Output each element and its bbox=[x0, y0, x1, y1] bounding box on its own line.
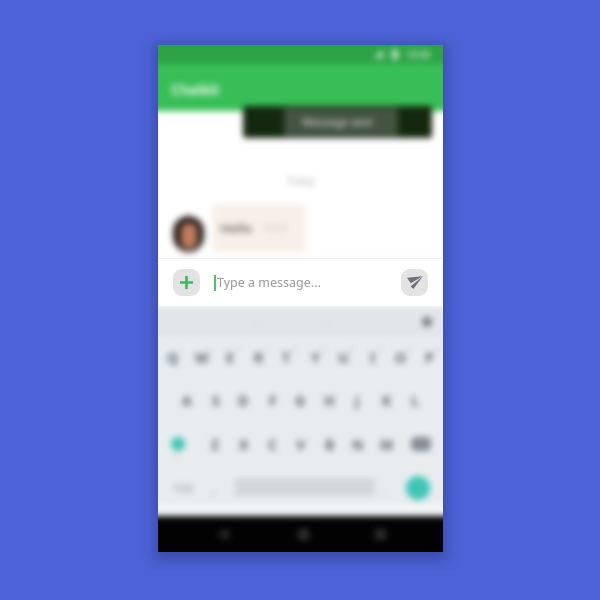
staticText: F bbox=[269, 391, 277, 410]
button[interactable]: R bbox=[244, 347, 273, 367]
button[interactable]: . bbox=[373, 476, 395, 500]
staticText: H bbox=[324, 391, 335, 410]
staticText: L bbox=[411, 391, 419, 410]
staticText: D bbox=[238, 391, 249, 410]
button[interactable]: U bbox=[329, 347, 358, 367]
button[interactable]: O bbox=[386, 347, 415, 367]
staticText: B bbox=[325, 435, 335, 454]
staticText: E bbox=[226, 348, 234, 367]
staticText: Type a message... bbox=[217, 274, 321, 291]
button[interactable]: Y bbox=[301, 347, 330, 367]
staticText: Z bbox=[211, 435, 220, 454]
button[interactable]: Backspace bbox=[407, 434, 435, 454]
staticText: 2 bbox=[208, 345, 212, 353]
staticText: M bbox=[380, 435, 394, 454]
button[interactable]: Z bbox=[201, 434, 230, 454]
staticText: C bbox=[268, 435, 277, 454]
button[interactable]: J bbox=[343, 390, 372, 410]
button[interactable]: K bbox=[372, 390, 401, 410]
button[interactable]: L bbox=[400, 390, 429, 410]
button[interactable]: Enter bbox=[406, 476, 430, 500]
staticText: G bbox=[295, 391, 306, 410]
staticText: J bbox=[355, 391, 360, 410]
staticText: Today bbox=[287, 174, 315, 188]
button[interactable]: Send bbox=[401, 269, 428, 296]
staticText: 10:30 bbox=[407, 48, 431, 60]
button[interactable]: Send bbox=[401, 269, 428, 296]
staticText: R bbox=[254, 348, 264, 367]
button[interactable]: N bbox=[343, 434, 372, 454]
staticText: A bbox=[182, 391, 192, 410]
button[interactable]: X bbox=[229, 434, 258, 454]
button[interactable]: B bbox=[315, 434, 344, 454]
button[interactable]: C bbox=[258, 434, 287, 454]
button[interactable]: Shift bbox=[164, 434, 192, 454]
button[interactable]: Home bbox=[289, 516, 317, 552]
staticText: N bbox=[352, 435, 364, 454]
staticText: Type a message... bbox=[217, 274, 321, 291]
staticText: U bbox=[338, 348, 349, 367]
staticText: K bbox=[382, 391, 392, 410]
button[interactable]: S bbox=[201, 390, 230, 410]
staticText: Message sent bbox=[302, 114, 373, 129]
button[interactable]: E bbox=[215, 347, 244, 367]
button[interactable]: Keyboard settings bbox=[421, 316, 433, 328]
staticText: I bbox=[370, 348, 376, 367]
staticText: S bbox=[212, 391, 220, 410]
button[interactable]: I bbox=[358, 347, 387, 367]
button[interactable]: V bbox=[286, 434, 315, 454]
button[interactable]: H bbox=[315, 390, 344, 410]
staticText: P bbox=[425, 348, 434, 367]
staticText: Chatkit bbox=[171, 80, 220, 99]
button[interactable]: A bbox=[172, 390, 201, 410]
staticText: W bbox=[195, 348, 209, 367]
staticText: T bbox=[282, 348, 291, 367]
button[interactable]: Add attachment bbox=[173, 269, 200, 296]
staticText: Q bbox=[167, 348, 179, 367]
button[interactable]: ?123 bbox=[167, 476, 199, 500]
button[interactable]: P bbox=[415, 347, 443, 367]
button[interactable]: Recents bbox=[366, 516, 394, 552]
button[interactable]: Q bbox=[158, 347, 187, 367]
button[interactable]: W bbox=[187, 347, 216, 367]
staticText: V bbox=[296, 435, 306, 454]
button[interactable]: G bbox=[286, 390, 315, 410]
staticText: X bbox=[239, 435, 249, 454]
button[interactable]: M bbox=[372, 434, 401, 454]
staticText: Hello bbox=[220, 219, 253, 237]
button[interactable]: Back bbox=[208, 516, 236, 552]
button[interactable]: D bbox=[229, 390, 258, 410]
staticText: ?123 bbox=[173, 482, 193, 494]
button[interactable]: F bbox=[258, 390, 287, 410]
staticText: O bbox=[395, 348, 407, 367]
button[interactable]: Space bbox=[235, 478, 375, 496]
button[interactable]: T bbox=[272, 347, 301, 367]
button[interactable]: Add attachment bbox=[173, 269, 200, 296]
staticText: Y bbox=[311, 348, 320, 367]
